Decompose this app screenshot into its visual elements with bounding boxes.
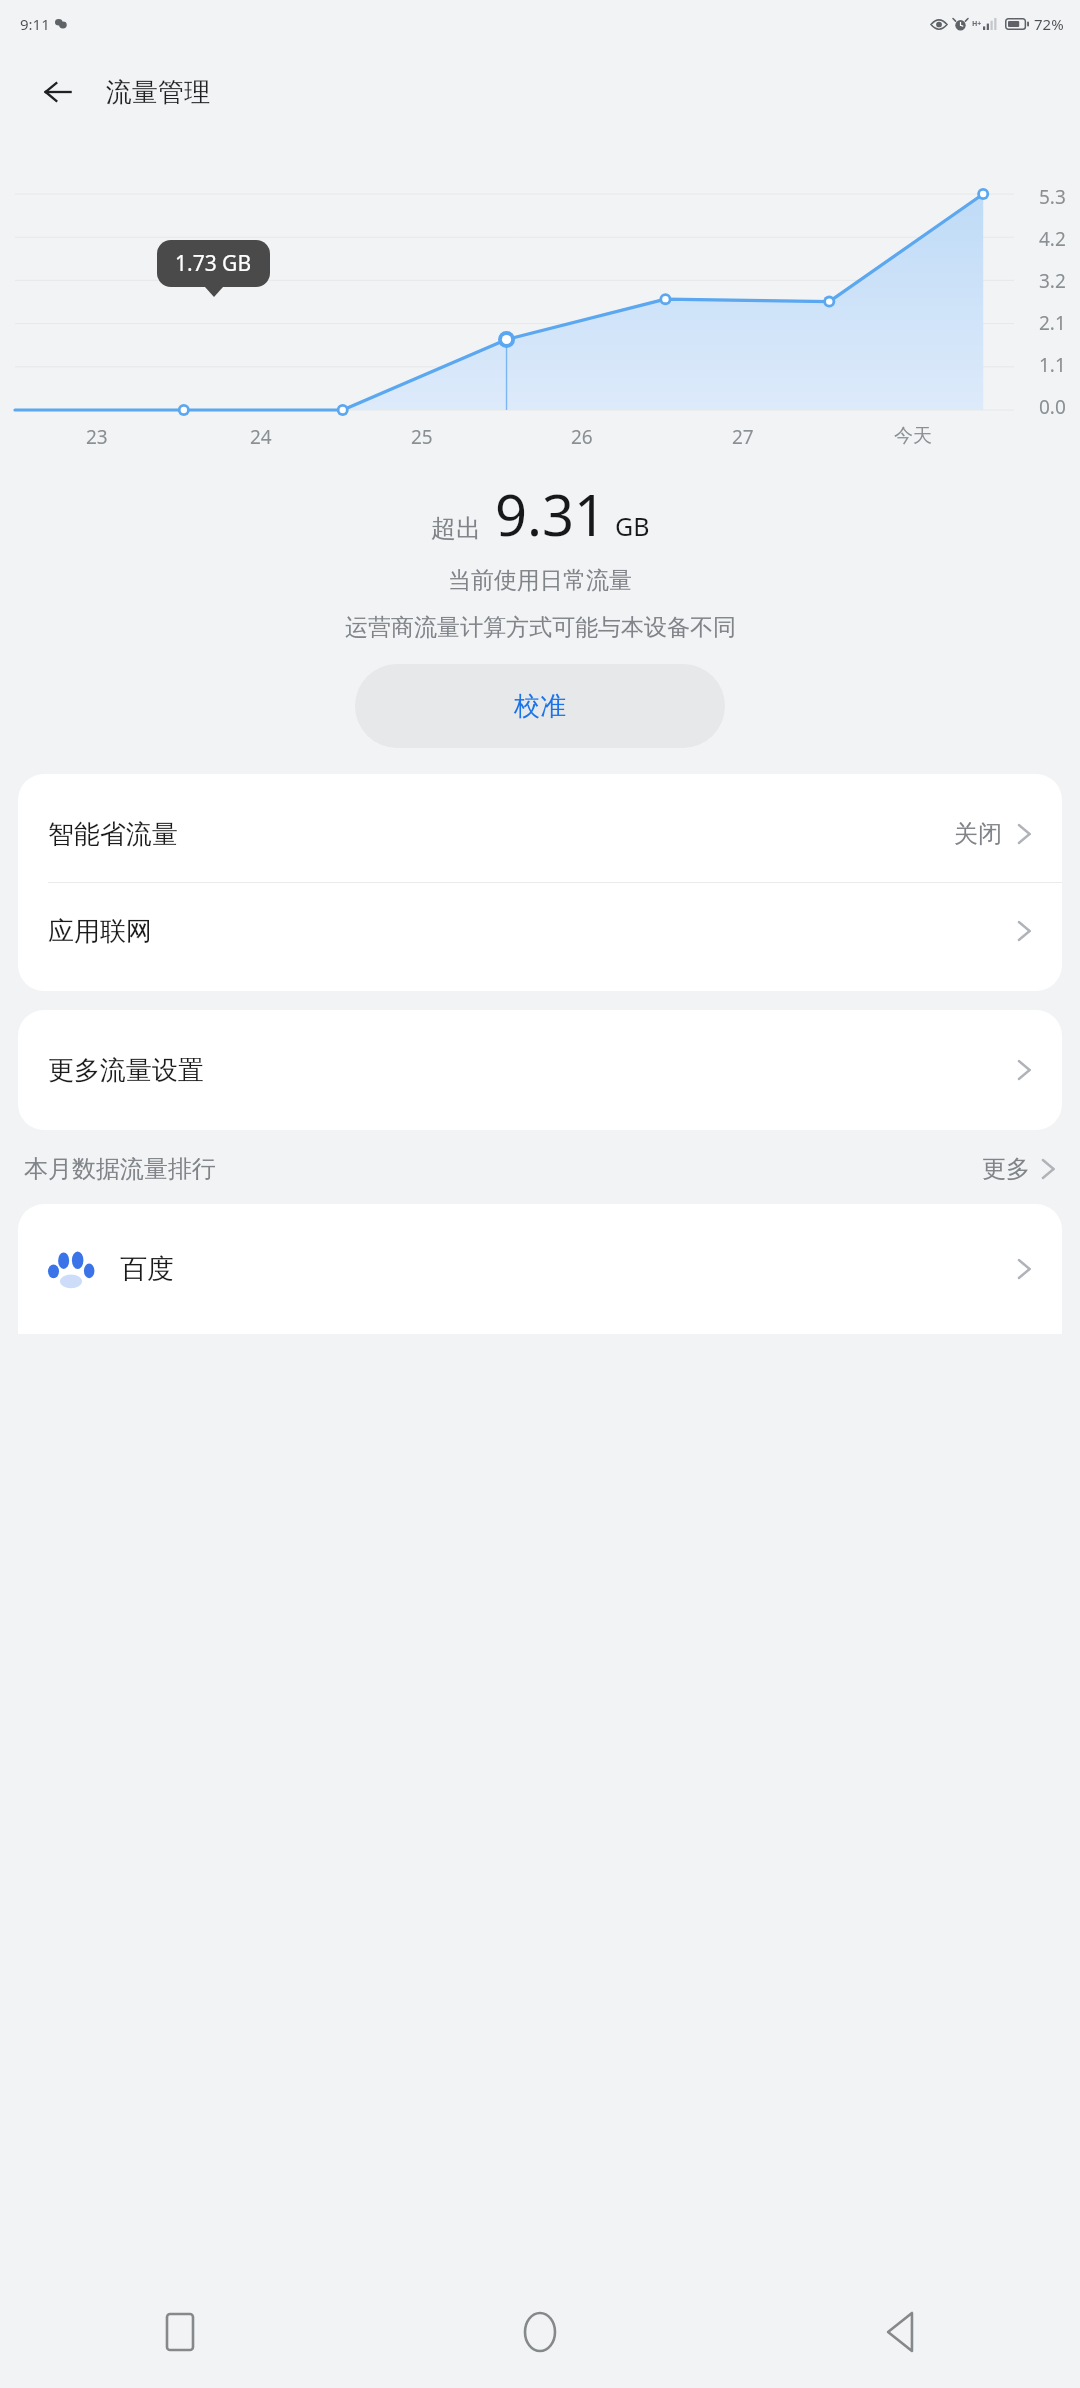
button[interactable]: Back — [30, 64, 86, 120]
staticText: 24 — [250, 424, 272, 450]
staticText: 27 — [732, 424, 754, 450]
staticText: 2.1 — [1039, 310, 1066, 336]
button[interactable]: 更多流量设置 — [18, 1022, 1062, 1118]
staticText: 4.2 — [1039, 226, 1066, 252]
staticText: 关闭 — [954, 819, 1002, 849]
staticText: 今天 — [894, 424, 932, 448]
button[interactable]: Back — [720, 2275, 1080, 2388]
staticText: 5.3 — [1039, 184, 1066, 210]
staticText: GB — [615, 509, 650, 543]
staticText: 更多 — [982, 1154, 1030, 1184]
staticText: 9.31 — [495, 476, 607, 552]
staticText: 23 — [86, 424, 108, 450]
staticText: 应用联网 — [48, 915, 152, 948]
staticText: 1.1 — [1039, 352, 1066, 378]
staticText: 25 — [411, 424, 433, 450]
button[interactable]: 校准 — [355, 664, 725, 748]
staticText: 1.73 GB — [175, 249, 252, 278]
staticText: 9:11 — [20, 14, 50, 34]
staticText: 校准 — [514, 690, 566, 723]
staticText: H+ — [972, 19, 982, 29]
button[interactable]: 本月数据流量排行 — [0, 1148, 1080, 1190]
button[interactable]: Home — [360, 2275, 720, 2388]
staticText: 百度 — [120, 1252, 174, 1286]
staticText: 3.2 — [1039, 268, 1066, 294]
staticText: 0.0 — [1039, 394, 1066, 420]
button[interactable]: 智能省流量 — [18, 786, 1062, 882]
button[interactable]: 百度 — [18, 1204, 1062, 1334]
staticText: 运营商流量计算方式可能与本设备不同 — [345, 613, 736, 642]
staticText: 本月数据流量排行 — [24, 1154, 216, 1184]
button[interactable]: 应用联网 — [18, 883, 1062, 979]
staticText: 更多流量设置 — [48, 1054, 204, 1087]
staticText: 流量管理 — [106, 76, 210, 109]
staticText: 超出 — [431, 513, 481, 544]
staticText: 智能省流量 — [48, 818, 178, 851]
staticText: 26 — [571, 424, 593, 450]
button[interactable]: Recent apps — [0, 2275, 360, 2388]
staticText: 72% — [1034, 14, 1064, 34]
staticText: 当前使用日常流量 — [448, 566, 632, 595]
